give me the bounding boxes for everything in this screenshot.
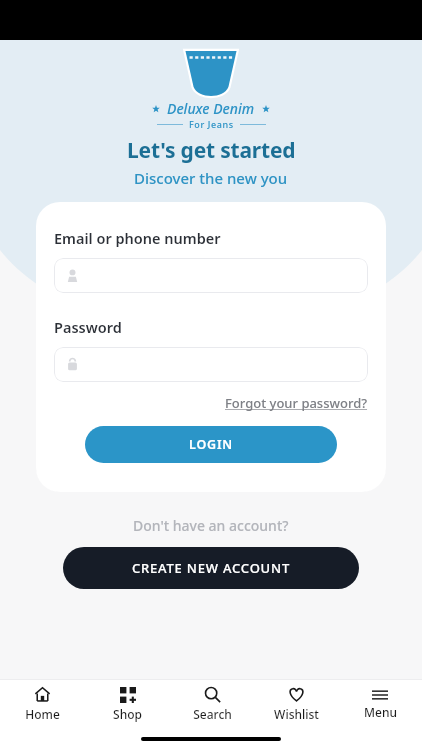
staticText: Don't have an account? — [133, 516, 289, 535]
other: Menu — [372, 689, 388, 701]
button[interactable] — [54, 258, 368, 293]
staticText: LOGIN — [189, 436, 234, 453]
button[interactable]: Wishlist — [254, 680, 338, 728]
button[interactable]: Forgot your password? — [225, 394, 368, 412]
button[interactable] — [54, 347, 368, 382]
button[interactable]: LOGIN — [85, 426, 337, 463]
staticText: Forgot your password? — [225, 394, 368, 412]
other: Shop — [120, 687, 136, 703]
other: Home — [34, 686, 51, 703]
staticText: Password — [54, 317, 122, 337]
other: Search — [204, 686, 221, 703]
staticText: Search — [193, 706, 232, 722]
button[interactable]: Home — [0, 680, 85, 728]
other: Wishlist — [288, 686, 305, 703]
button[interactable]: Search — [170, 680, 254, 728]
staticText: Discover the new you — [134, 168, 288, 188]
staticText: Email or phone number — [54, 228, 221, 248]
staticText: Shop — [113, 706, 142, 722]
staticText: Wishlist — [274, 706, 319, 722]
staticText: Home — [25, 706, 60, 722]
button[interactable]: Menu — [338, 680, 422, 728]
staticText: Let's get started — [127, 136, 296, 165]
button[interactable]: CREATE NEW ACCOUNT — [63, 547, 359, 589]
staticText: Menu — [364, 704, 397, 720]
staticText: CREATE NEW ACCOUNT — [132, 559, 291, 577]
button[interactable]: Shop — [85, 680, 170, 728]
staticText: For Jeans — [189, 118, 234, 130]
staticText: Deluxe Denim — [167, 99, 255, 118]
